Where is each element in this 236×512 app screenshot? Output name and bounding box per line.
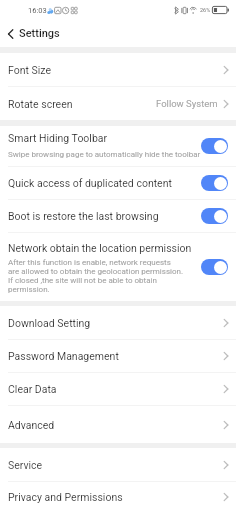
button[interactable]: Back	[3, 26, 19, 42]
staticText: Boot is restore the last browsing	[8, 210, 159, 222]
button[interactable]: Boot is restore the last browsing	[0, 200, 236, 232]
button[interactable]: Clear Data	[0, 373, 236, 405]
staticText: After this function is enable, network r…	[8, 258, 171, 267]
staticText: permission.	[8, 285, 50, 294]
button[interactable]: Advanced	[0, 406, 236, 443]
staticText: Privacy and Permissions	[8, 491, 123, 503]
button[interactable]: Toggle on	[201, 259, 228, 275]
staticText: Service	[8, 459, 43, 471]
button[interactable]: Toggle on	[201, 175, 228, 191]
staticText: Password Management	[8, 350, 119, 362]
staticText: Font Size	[8, 64, 52, 76]
staticText: Advanced	[8, 419, 55, 431]
staticText: Quick access of duplicated content	[8, 177, 172, 189]
button[interactable]: Toggle on	[201, 138, 228, 154]
button[interactable]: Network obtain the location permission	[0, 233, 236, 301]
staticText: are allowed to obtain the geolocation pe…	[8, 267, 184, 276]
staticText: Settings	[19, 27, 60, 40]
staticText: Network obtain the location permission	[8, 242, 192, 254]
button[interactable]: Privacy and Permissions	[0, 482, 236, 512]
staticText: Clear Data	[8, 383, 57, 395]
button[interactable]: Service	[0, 448, 236, 481]
staticText: Smart Hiding Toolbar	[8, 132, 108, 144]
staticText: Rotate screen	[8, 98, 73, 110]
staticText: Swipe browsing page to automatically hid…	[8, 150, 201, 159]
button[interactable]: Password Management	[0, 340, 236, 372]
button[interactable]: Font Size	[0, 53, 236, 86]
staticText: Download Setting	[8, 317, 91, 329]
staticText: If closed ,the site will not be able to …	[8, 276, 157, 285]
button[interactable]: Rotate screen	[0, 87, 236, 120]
staticText: 26%	[200, 7, 211, 13]
staticText: Follow System	[156, 98, 218, 109]
button[interactable]: Smart Hiding Toolbar	[0, 126, 236, 166]
button[interactable]: Quick access of duplicated content	[0, 167, 236, 199]
button[interactable]: Toggle on	[201, 208, 228, 224]
staticText: 16:03	[28, 6, 47, 15]
button[interactable]: Download Setting	[0, 306, 236, 339]
